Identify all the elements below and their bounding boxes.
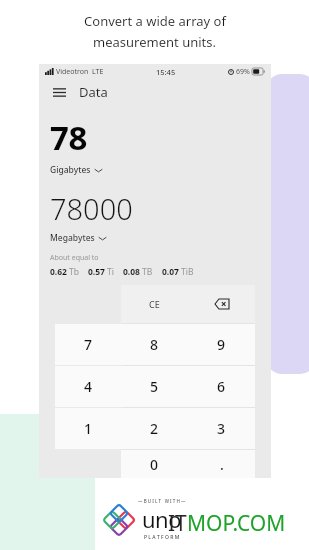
staticText: — B U I L T W I T H —: [138, 498, 186, 504]
button[interactable]: Menu: [48, 81, 70, 103]
staticText: 0.57: [88, 266, 105, 278]
staticText: 0: [150, 455, 159, 474]
staticText: Videotron: [56, 67, 89, 77]
staticText: About equal to: [50, 253, 99, 263]
staticText: 6: [217, 377, 226, 396]
staticText: 78000: [50, 189, 133, 228]
button[interactable]: 4: [55, 366, 121, 407]
staticText: 7: [84, 335, 93, 354]
staticText: 78: [50, 115, 87, 160]
staticText: Gigabytes: [50, 164, 91, 176]
staticText: Convert a wide array of: [84, 12, 226, 30]
staticText: 15:45: [156, 67, 176, 77]
button[interactable]: 7: [55, 324, 121, 365]
staticText: TiB: [181, 266, 194, 278]
button[interactable]: 8: [121, 324, 188, 365]
staticText: IT: [168, 509, 187, 538]
staticText: TB: [142, 266, 153, 278]
button[interactable]: 2: [121, 408, 188, 449]
staticText: measurement units.: [93, 33, 216, 51]
staticText: uno: [142, 504, 182, 534]
button[interactable]: 3: [188, 408, 255, 449]
staticText: 9: [217, 335, 226, 354]
staticText: LTE: [92, 67, 104, 77]
staticText: 2: [150, 419, 159, 438]
staticText: CE: [149, 298, 160, 310]
button[interactable]: Gigabytes: [50, 164, 102, 176]
staticText: 5: [150, 377, 159, 396]
button[interactable]: CE: [121, 285, 188, 323]
staticText: 4: [84, 377, 93, 396]
staticText: 8: [150, 335, 159, 354]
staticText: 0.07: [162, 266, 179, 278]
staticText: Data: [79, 83, 108, 101]
staticText: 1: [84, 419, 93, 438]
staticText: 0.62: [50, 266, 67, 278]
staticText: Megabytes: [50, 232, 95, 244]
staticText: Tb: [69, 266, 79, 278]
staticText: 69%: [236, 67, 250, 77]
staticText: 0.08: [123, 266, 140, 278]
staticText: 3: [217, 419, 226, 438]
button[interactable]: Megabytes: [50, 232, 106, 244]
button[interactable]: 9: [188, 324, 255, 365]
button[interactable]: 1: [55, 408, 121, 449]
staticText: .: [220, 455, 224, 474]
staticText: MOP.COM: [187, 509, 286, 538]
button[interactable]: Backspace: [188, 285, 255, 323]
button[interactable]: 6: [188, 366, 255, 407]
button[interactable]: 0: [121, 450, 188, 478]
staticText: P L A T F O R M: [144, 534, 180, 541]
staticText: Ti: [107, 266, 114, 278]
button[interactable]: 5: [121, 366, 188, 407]
button[interactable]: .: [188, 450, 255, 478]
